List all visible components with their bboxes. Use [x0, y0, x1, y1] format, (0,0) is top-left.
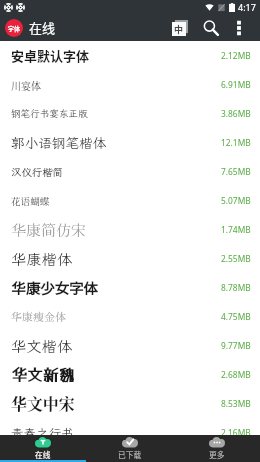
staticText: 字体: [8, 24, 21, 33]
button[interactable]: 郭小语钢笔楷体: [0, 128, 260, 157]
staticText: 华文新魏: [11, 365, 75, 384]
staticText: 6.91MB: [221, 79, 251, 90]
button[interactable]: Switch language: [164, 14, 195, 41]
button[interactable]: Search: [195, 14, 226, 41]
button[interactable]: 华康少女字体: [0, 273, 260, 302]
staticText: 华康少女字体: [11, 277, 98, 298]
button[interactable]: 华康瘦金体: [0, 302, 260, 331]
staticText: 华康瘦金体: [11, 310, 66, 323]
staticText: 2.12MB: [221, 50, 251, 61]
staticText: 4.75MB: [221, 311, 251, 322]
staticText: 2.68MB: [221, 369, 251, 380]
staticText: 4:17: [238, 1, 256, 13]
button[interactable]: 钢笔行书宴东正版: [0, 99, 260, 128]
button[interactable]: 华文新魏: [0, 360, 260, 389]
staticText: 钢笔行书宴东正版: [11, 107, 88, 120]
staticText: 5.07MB: [221, 195, 251, 206]
staticText: 8.53MB: [221, 398, 251, 409]
button[interactable]: 华康简仿宋: [0, 215, 260, 244]
button[interactable]: 华文楷体: [0, 331, 260, 360]
staticText: 华文楷体: [11, 336, 73, 356]
button[interactable]: 在线: [0, 435, 86, 462]
staticText: 1.74MB: [221, 224, 251, 235]
staticText: 在线: [29, 18, 56, 37]
staticText: 华康楷体: [11, 249, 73, 269]
staticText: 12.1MB: [221, 137, 251, 148]
button[interactable]: 华文中宋: [0, 389, 260, 418]
button[interactable]: 更多: [173, 435, 260, 462]
button[interactable]: 花语蝴蝶: [0, 186, 260, 215]
staticText: 汉仪行楷简: [11, 165, 63, 179]
staticText: 郭小语钢笔楷体: [11, 134, 107, 152]
staticText: 华文中宋: [11, 392, 75, 415]
staticText: 9.77MB: [221, 340, 251, 351]
button[interactable]: More options: [226, 14, 251, 41]
button[interactable]: 汉仪行楷简: [0, 157, 260, 186]
staticText: 3.86MB: [221, 108, 251, 119]
button[interactable]: 华康楷体: [0, 244, 260, 273]
button[interactable]: 安卓默认字体: [0, 41, 260, 70]
staticText: 已下载: [118, 449, 142, 460]
staticText: 7.65MB: [221, 166, 251, 177]
staticText: 2.55MB: [221, 253, 251, 264]
staticText: 中: [174, 23, 184, 36]
staticText: 华康简仿宋: [11, 221, 87, 239]
staticText: 川宴体: [11, 78, 41, 92]
staticText: 安卓默认字体: [11, 46, 90, 65]
staticText: 在线: [35, 449, 51, 460]
staticText: 更多: [209, 449, 225, 460]
button[interactable]: 川宴体: [0, 70, 260, 99]
button[interactable]: 已下载: [86, 435, 173, 462]
staticText: 8.78MB: [221, 282, 251, 293]
staticText: 青春之行书: [11, 425, 74, 441]
button[interactable]: 青春之行书: [0, 418, 260, 447]
staticText: 2.16MB: [221, 427, 251, 438]
staticText: 花语蝴蝶: [11, 194, 50, 208]
